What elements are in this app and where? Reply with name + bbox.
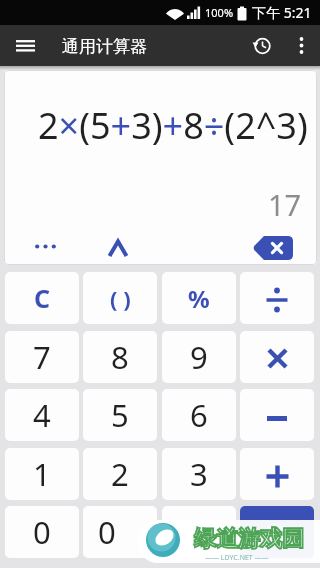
button[interactable]: 7 <box>5 331 79 383</box>
staticText: 9 <box>190 336 208 378</box>
button[interactable]: 0 <box>83 506 157 558</box>
button[interactable]: 1 <box>5 448 79 500</box>
staticText: 下午 5:21 <box>252 3 312 22</box>
button[interactable] <box>247 234 299 262</box>
button[interactable]: C <box>5 272 79 324</box>
staticText: 5 <box>111 394 129 436</box>
staticText: % <box>188 282 210 315</box>
button[interactable]: 2 <box>83 448 157 500</box>
staticText: 0 <box>33 511 51 553</box>
staticText: 7 <box>33 336 51 378</box>
button[interactable]: ( ) <box>83 272 157 324</box>
staticText: ( ) <box>110 283 131 313</box>
button[interactable]: 4 <box>5 389 79 441</box>
staticText: C <box>34 281 51 315</box>
button[interactable] <box>240 506 314 558</box>
button[interactable]: 5 <box>83 389 157 441</box>
staticText: 3 <box>190 453 208 495</box>
staticText: 1 <box>33 453 51 495</box>
staticText: 2 <box>111 453 129 495</box>
button[interactable]: % <box>162 272 236 324</box>
staticText: 8 <box>111 336 129 378</box>
button[interactable] <box>240 389 314 441</box>
staticText: 通用计算器 <box>62 36 147 57</box>
button[interactable]: . <box>162 506 236 558</box>
staticText: 绿道游戏园 <box>194 525 304 553</box>
staticText: 6 <box>190 394 208 436</box>
button[interactable] <box>240 331 314 383</box>
staticText: 17 <box>268 185 302 219</box>
button[interactable] <box>20 230 71 262</box>
button[interactable] <box>246 30 277 61</box>
staticText: 100% <box>205 5 234 20</box>
button[interactable] <box>8 31 42 61</box>
button[interactable]: 3 <box>162 448 236 500</box>
button[interactable] <box>94 232 142 264</box>
button[interactable]: 0 <box>5 506 79 558</box>
button[interactable]: 9 <box>162 331 236 383</box>
button[interactable] <box>286 30 316 61</box>
button[interactable] <box>240 272 314 324</box>
button[interactable] <box>240 448 314 500</box>
staticText: 2×(5+3)+8÷(2^3) <box>38 101 308 147</box>
staticText: —— LDYC.NET —— <box>205 553 269 563</box>
staticText: 0 <box>98 511 116 553</box>
staticText: . <box>195 511 204 553</box>
staticText: 4 <box>33 394 51 436</box>
button[interactable]: 6 <box>162 389 236 441</box>
button[interactable]: 8 <box>83 331 157 383</box>
